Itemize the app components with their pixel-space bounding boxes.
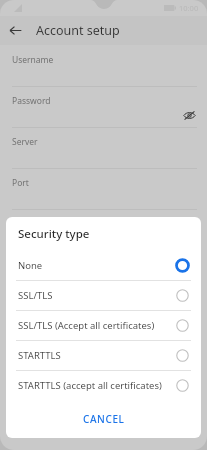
button[interactable]: Server	[0, 128, 207, 169]
button[interactable]: STARTTLS (accept all certificates)	[6, 371, 201, 400]
staticText: Password	[12, 95, 51, 107]
button[interactable]: Back	[0, 16, 30, 45]
button[interactable]: SSL/TLS	[6, 281, 201, 310]
staticText: STARTTLS	[18, 349, 61, 362]
staticText: Port	[12, 177, 29, 189]
staticText: Username	[12, 54, 54, 66]
button[interactable]: Show password	[181, 107, 197, 123]
staticText: STARTTLS (accept all certificates)	[18, 379, 162, 392]
staticText: CANCEL	[83, 412, 125, 426]
staticText: SSL/TLS	[18, 289, 53, 302]
button[interactable]: CANCEL	[6, 400, 201, 438]
button[interactable]: None	[6, 251, 201, 280]
staticText: Server	[12, 136, 38, 148]
staticText: 10:00	[179, 3, 199, 13]
button[interactable]: Security type	[0, 210, 207, 240]
button[interactable]: Username	[0, 46, 207, 87]
button[interactable]: SSL/TLS (Accept all certificates)	[6, 311, 201, 340]
button[interactable]: STARTTLS	[6, 341, 201, 370]
button[interactable]: Port	[0, 169, 207, 210]
button[interactable]: Password	[0, 87, 207, 128]
staticText: Security type	[18, 226, 90, 242]
staticText: SSL/TLS (Accept all certificates)	[18, 319, 155, 332]
staticText: Account setup	[36, 22, 120, 39]
staticText: None	[18, 259, 43, 272]
